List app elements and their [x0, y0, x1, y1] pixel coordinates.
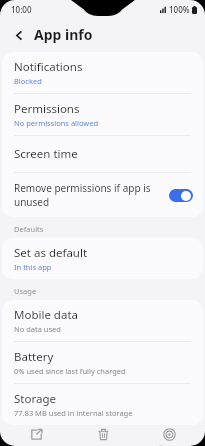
staticText: Defaults [14, 224, 44, 234]
staticText: Set as default [14, 245, 88, 261]
button[interactable]: Set as default [2, 238, 203, 279]
staticText: 100% [169, 4, 190, 15]
button[interactable]: Open [5, 425, 67, 446]
staticText: Notifications [14, 59, 83, 75]
staticText: Storage [14, 391, 56, 407]
button[interactable]: Force stop [138, 425, 200, 446]
staticText: Mobile data [14, 307, 78, 323]
staticText: No permissions allowed [14, 118, 99, 128]
staticText: Remove permissions if app is unused [14, 181, 165, 209]
staticText: 10:00 [11, 4, 32, 15]
staticText: 0% used since last fully charged [14, 366, 126, 376]
button[interactable]: Back [9, 25, 29, 45]
button[interactable]: Uninstall [72, 425, 134, 446]
staticText: No data used [14, 324, 61, 334]
button[interactable]: Remove permissions if app is unused [2, 173, 203, 217]
staticText: App info [34, 25, 93, 44]
staticText: Blocked [14, 76, 42, 86]
staticText: Screen time [14, 146, 78, 162]
staticText: Battery [14, 349, 54, 365]
button[interactable]: Permissions [2, 94, 203, 135]
button[interactable]: Mobile data [2, 300, 203, 341]
button[interactable]: Battery [2, 342, 203, 383]
button[interactable]: Notifications [2, 52, 203, 93]
staticText: Permissions [14, 101, 80, 117]
staticText: In this app [14, 262, 52, 272]
staticText: Usage [14, 286, 37, 296]
staticText: 77.83 MB used in internal storage [14, 408, 133, 418]
button[interactable]: Screen time [2, 136, 203, 172]
button[interactable]: Storage [2, 384, 203, 425]
